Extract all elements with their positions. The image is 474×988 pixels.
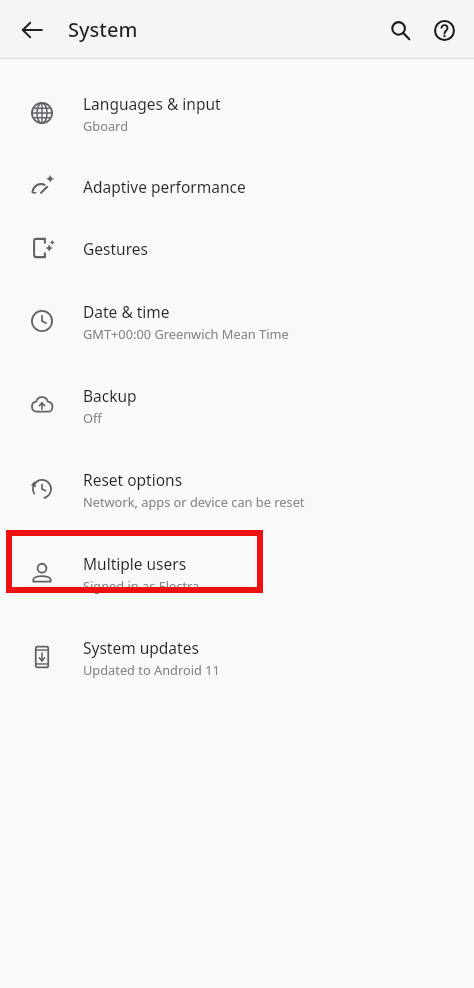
- staticText: Network, apps or device can be reset: [83, 493, 305, 510]
- button[interactable]: Search: [378, 8, 422, 52]
- button[interactable]: Reset options: [0, 447, 474, 531]
- button[interactable]: Multiple users: [0, 531, 474, 615]
- button[interactable]: Backup: [0, 363, 474, 447]
- staticText: Backup: [83, 385, 137, 406]
- staticText: System updates: [83, 637, 199, 658]
- button[interactable]: Adaptive performance: [0, 155, 474, 217]
- staticText: Gestures: [83, 238, 148, 259]
- button[interactable]: Help: [422, 8, 466, 52]
- staticText: Signed in as Electra: [83, 577, 200, 594]
- staticText: Gboard: [83, 117, 129, 134]
- staticText: Off: [83, 409, 102, 426]
- staticText: Updated to Android 11: [83, 661, 220, 678]
- button[interactable]: Gestures: [0, 217, 474, 279]
- staticText: Adaptive performance: [83, 176, 246, 197]
- staticText: Reset options: [83, 469, 183, 490]
- staticText: Date & time: [83, 301, 170, 322]
- staticText: Multiple users: [83, 553, 187, 574]
- button[interactable]: Date & time: [0, 279, 474, 363]
- staticText: System: [68, 16, 138, 43]
- staticText: GMT+00:00 Greenwich Mean Time: [83, 325, 289, 342]
- button[interactable]: System updates: [0, 615, 474, 699]
- staticText: Languages & input: [83, 93, 221, 114]
- button[interactable]: Back: [10, 8, 54, 52]
- button[interactable]: Languages & input: [0, 71, 474, 155]
